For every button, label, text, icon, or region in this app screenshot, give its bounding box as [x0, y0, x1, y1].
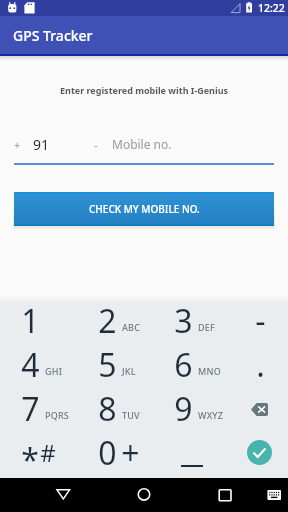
- staticText: #: [40, 436, 56, 469]
- staticText: Mobile no.: [112, 136, 172, 152]
- staticText: JKL: [122, 365, 136, 377]
- staticText: +: [121, 431, 140, 465]
- staticText: 9: [174, 387, 193, 421]
- staticText: MNO: [198, 365, 221, 377]
- button[interactable]: Recent apps: [184, 478, 260, 512]
- button[interactable]: Confirm: [216, 432, 288, 478]
- button[interactable]: Show keyboard: [260, 478, 288, 512]
- button[interactable]: [0, 386, 72, 432]
- staticText: -: [255, 299, 266, 333]
- button[interactable]: [144, 341, 216, 386]
- button[interactable]: [72, 432, 144, 478]
- staticText: .: [256, 343, 265, 377]
- staticText: GPS Tracker: [13, 26, 93, 45]
- button[interactable]: CHECK MY MOBILE NO.: [14, 192, 274, 226]
- staticText: PQRS: [45, 409, 69, 421]
- button[interactable]: [0, 296, 72, 341]
- staticText: 8: [98, 387, 117, 421]
- staticText: TUV: [122, 409, 140, 421]
- staticText: 6: [174, 343, 193, 377]
- staticText: CHECK MY MOBILE NO.: [89, 202, 200, 216]
- staticText: 3: [174, 299, 193, 333]
- staticText: *: [21, 438, 39, 472]
- staticText: 91: [33, 135, 50, 154]
- staticText: +: [14, 137, 21, 152]
- staticText: 7: [21, 387, 40, 421]
- staticText: Enter registered mobile with I-Genius: [0, 84, 288, 96]
- button[interactable]: [72, 386, 144, 432]
- staticText: DEF: [198, 321, 215, 333]
- staticText: 4: [21, 343, 40, 377]
- staticText: -: [94, 137, 98, 152]
- button[interactable]: [72, 341, 144, 386]
- button[interactable]: [216, 296, 288, 341]
- staticText: WXYZ: [198, 409, 224, 421]
- button[interactable]: Back: [0, 478, 104, 512]
- button[interactable]: Backspace: [216, 386, 288, 432]
- button[interactable]: [0, 432, 72, 478]
- staticText: 0: [98, 431, 117, 465]
- button[interactable]: [144, 386, 216, 432]
- staticText: 2: [98, 299, 117, 333]
- button[interactable]: Home: [104, 478, 184, 512]
- staticText: 12:22: [258, 1, 285, 15]
- button[interactable]: [0, 341, 72, 386]
- staticText: 1: [21, 299, 40, 333]
- staticText: 5: [98, 343, 117, 377]
- staticText: GHI: [45, 365, 63, 377]
- button[interactable]: [144, 296, 216, 341]
- button[interactable]: [144, 432, 216, 478]
- button[interactable]: [216, 341, 288, 386]
- staticText: ABC: [122, 321, 141, 333]
- button[interactable]: [72, 296, 144, 341]
